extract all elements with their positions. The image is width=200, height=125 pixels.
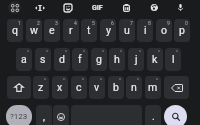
staticText: 7 <box>130 20 133 26</box>
button[interactable]: u <box>119 19 135 42</box>
staticText: g <box>96 53 102 65</box>
button[interactable]: c <box>71 76 87 99</box>
button[interactable]: a <box>16 48 32 71</box>
staticText: x <box>57 81 63 93</box>
button[interactable]: j <box>128 48 144 71</box>
button[interactable]: e <box>44 19 60 42</box>
button[interactable]: GIF <box>88 0 106 15</box>
button[interactable]: z <box>33 76 49 99</box>
staticText: y <box>106 24 111 36</box>
staticText: 6 <box>111 20 114 26</box>
staticText: 5 <box>92 20 95 26</box>
staticText: ° <box>156 77 158 83</box>
staticText: s <box>40 53 46 65</box>
button[interactable]: o <box>156 19 172 42</box>
button[interactable]: Shift <box>7 76 31 99</box>
staticText: ° <box>83 49 85 55</box>
button[interactable]: m <box>145 76 161 99</box>
staticText: d <box>59 53 65 65</box>
button[interactable]: Emoji <box>53 105 69 125</box>
staticText: r <box>69 24 73 36</box>
button[interactable]: Search <box>163 105 188 125</box>
staticText: ° <box>137 77 139 83</box>
staticText: ° <box>44 77 46 83</box>
staticText: . <box>152 110 155 122</box>
staticText: 9 <box>167 20 170 26</box>
staticText: 1 <box>18 20 21 26</box>
staticText: j <box>135 53 138 65</box>
button[interactable]: . <box>145 105 161 125</box>
staticText: ° <box>176 49 178 55</box>
button[interactable]: ?123 <box>6 105 32 125</box>
staticText: ?123 <box>10 112 28 121</box>
staticText: ° <box>119 77 121 83</box>
button[interactable]: More options <box>5 0 23 15</box>
button[interactable]: x <box>52 76 68 99</box>
button[interactable]: p <box>174 19 190 42</box>
button[interactable]: d <box>54 48 70 71</box>
staticText: p <box>179 24 185 36</box>
button[interactable]: n <box>126 76 142 99</box>
staticText: z <box>38 81 44 93</box>
staticText: b <box>113 81 119 93</box>
button[interactable]: q <box>7 19 23 42</box>
button[interactable]: Backspace <box>164 76 189 99</box>
staticText: ° <box>46 49 48 55</box>
staticText: e <box>49 24 55 36</box>
staticText: ° <box>82 77 84 83</box>
staticText: w <box>30 24 38 36</box>
button[interactable]: h <box>109 48 125 71</box>
staticText: ° <box>65 49 67 55</box>
staticText: ° <box>27 49 29 55</box>
button[interactable]: v <box>89 76 105 99</box>
staticText: l <box>172 53 175 65</box>
staticText: q <box>12 24 18 36</box>
staticText: o <box>161 24 167 36</box>
button[interactable]: i <box>137 19 153 42</box>
staticText: t <box>87 24 91 36</box>
staticText: k <box>152 53 158 65</box>
staticText: ° <box>158 49 160 55</box>
staticText: u <box>124 24 130 36</box>
button[interactable]: Clipboard <box>117 0 135 15</box>
button[interactable]: y <box>100 19 116 42</box>
button[interactable]: t <box>81 19 97 42</box>
staticText: f <box>78 53 82 65</box>
staticText: a <box>21 53 27 65</box>
staticText: ° <box>100 77 102 83</box>
staticText: i <box>144 24 147 36</box>
button[interactable]: s <box>35 48 51 71</box>
button[interactable]: r <box>63 19 79 42</box>
button[interactable]: , <box>36 105 52 125</box>
staticText: ° <box>63 77 65 83</box>
staticText: 3 <box>55 20 58 26</box>
staticText: m <box>148 81 158 93</box>
staticText: v <box>94 81 100 93</box>
staticText: 2 <box>37 20 40 26</box>
button[interactable]: g <box>91 48 107 71</box>
button[interactable]: f <box>72 48 88 71</box>
staticText: 8 <box>148 20 151 26</box>
button[interactable]: k <box>147 48 163 71</box>
button[interactable]: Stickers <box>59 0 77 15</box>
button[interactable]: b <box>108 76 124 99</box>
staticText: ° <box>139 49 141 55</box>
button[interactable]: Voice input <box>171 0 189 15</box>
staticText: c <box>76 81 82 93</box>
staticText: h <box>114 53 120 65</box>
button[interactable]: Text editing <box>31 0 49 15</box>
staticText: 0 <box>185 20 188 26</box>
staticText: n <box>131 81 137 93</box>
staticText: 4 <box>74 20 77 26</box>
button[interactable]: l <box>165 48 181 71</box>
button[interactable]: w <box>26 19 42 42</box>
button[interactable]: Themes <box>145 0 163 15</box>
staticText: ° <box>120 49 122 55</box>
staticText: GIF <box>92 4 103 12</box>
staticText: ° <box>102 49 104 55</box>
staticText: , <box>43 110 46 122</box>
